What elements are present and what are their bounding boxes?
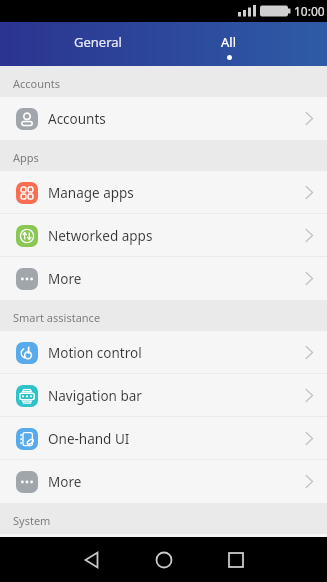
staticText: Accounts [48, 110, 106, 128]
staticText: More [48, 270, 82, 288]
button[interactable]: One-hand UI [0, 417, 327, 460]
button[interactable]: Networked apps [0, 214, 327, 257]
staticText: All [221, 33, 237, 51]
button[interactable]: Manage apps [0, 171, 327, 214]
staticText: One-hand UI [48, 430, 130, 448]
staticText: Apps [13, 150, 39, 165]
staticText: Accounts [13, 76, 61, 91]
staticText: Motion control [48, 344, 142, 362]
staticText: Navigation bar [48, 387, 142, 405]
button[interactable]: More [0, 460, 327, 503]
button[interactable]: Accounts [0, 97, 327, 140]
button[interactable]: Navigation bar [0, 374, 327, 417]
button[interactable]: Motion control [0, 331, 327, 374]
button[interactable] [132, 537, 196, 582]
staticText: More [48, 473, 82, 491]
staticText: Smart assistance [13, 310, 101, 325]
staticText: System [13, 513, 51, 528]
button[interactable] [60, 537, 124, 582]
staticText: Manage apps [48, 184, 134, 202]
staticText: General [74, 33, 122, 51]
staticText: 10:00 [294, 3, 325, 19]
button[interactable]: More [0, 257, 327, 300]
staticText: Networked apps [48, 227, 153, 245]
button[interactable]: General [0, 22, 163, 66]
button[interactable] [204, 537, 268, 582]
button[interactable]: All [163, 22, 327, 66]
